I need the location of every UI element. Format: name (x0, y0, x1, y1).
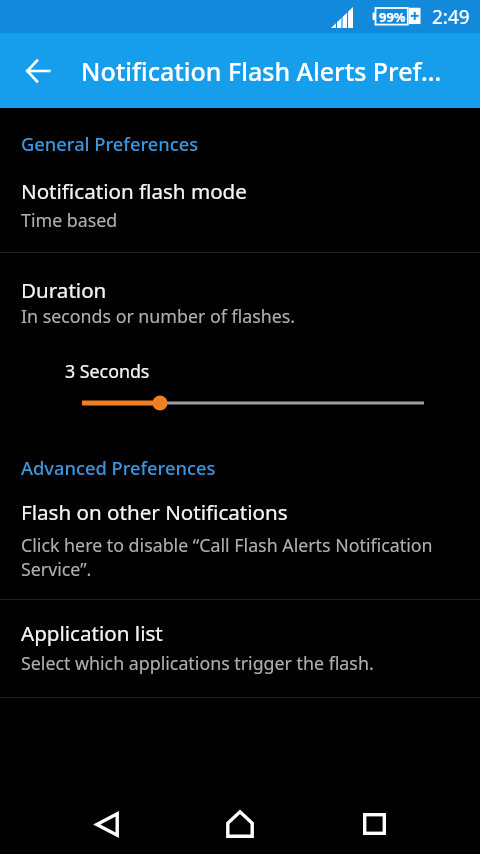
staticText: Duration (21, 276, 107, 304)
staticText: 2:49 (432, 4, 470, 30)
button[interactable]: Back (79, 796, 135, 852)
button[interactable]: Application list (0, 600, 480, 697)
button[interactable]: Back (10, 33, 66, 108)
staticText: Notification flash mode (21, 177, 247, 205)
button[interactable]: Duration (0, 253, 480, 340)
staticText: Application list (21, 619, 163, 647)
staticText: 3 Seconds (65, 359, 150, 383)
staticText: Advanced Preferences (21, 455, 216, 480)
staticText: Flash on other Notifications (21, 498, 288, 526)
staticText: 99% (379, 8, 406, 26)
button[interactable]: Recents (346, 796, 402, 852)
staticText: Click here to disable “Call Flash Alerts… (21, 533, 439, 581)
button[interactable]: Flash on other Notifications (0, 484, 480, 599)
staticText: General Preferences (21, 131, 199, 156)
staticText: Notification Flash Alerts Pref… (81, 54, 442, 88)
staticText: In seconds or number of flashes. (21, 304, 296, 328)
staticText: Time based (21, 208, 118, 232)
staticText: Select which applications trigger the fl… (21, 651, 374, 675)
button[interactable]: Notification flash mode (0, 160, 480, 252)
button[interactable]: Duration slider (0, 391, 480, 415)
button[interactable]: Home (212, 796, 268, 852)
